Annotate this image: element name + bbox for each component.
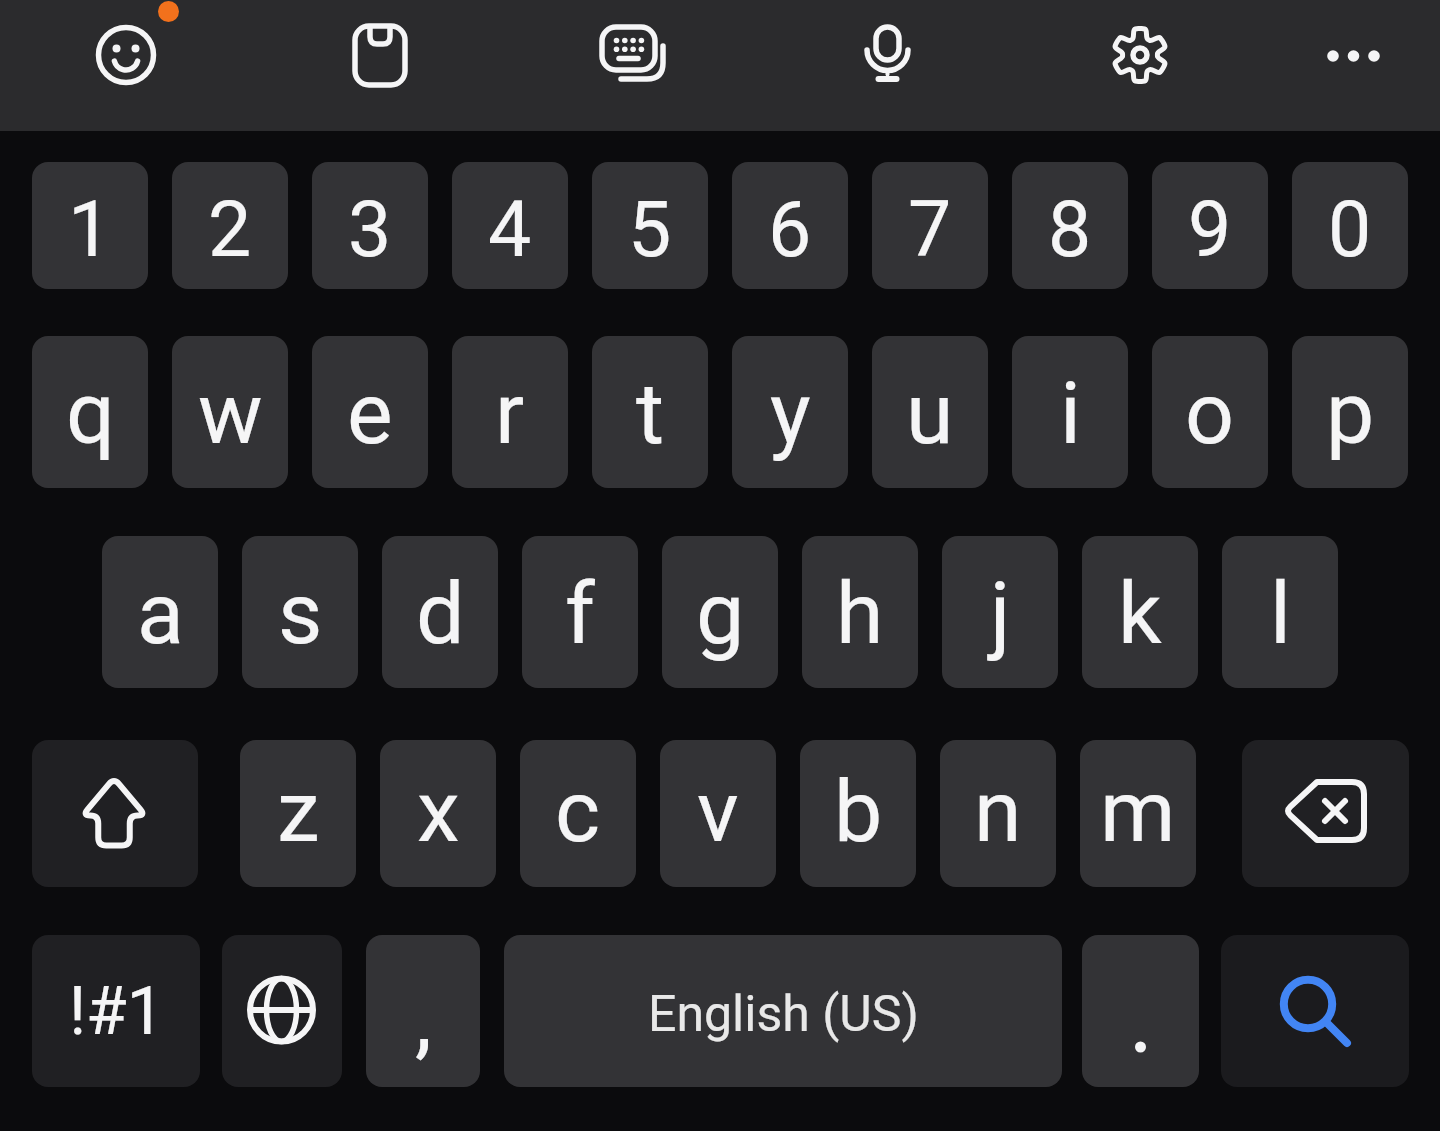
button[interactable]: y — [732, 336, 848, 488]
staticText: , — [415, 968, 432, 1069]
staticText: z — [277, 761, 320, 862]
staticText: 9 — [1188, 185, 1232, 275]
button[interactable]: g — [662, 536, 778, 688]
button[interactable]: p — [1292, 336, 1408, 488]
staticText: n — [974, 761, 1022, 862]
button[interactable]: English (US) — [504, 935, 1062, 1087]
button[interactable]: 1 — [32, 162, 148, 289]
button[interactable]: i — [1012, 336, 1128, 488]
staticText: h — [836, 563, 884, 664]
button[interactable] — [1242, 740, 1409, 887]
button[interactable] — [832, 0, 942, 131]
staticText: 4 — [488, 185, 532, 275]
staticText: w — [198, 363, 263, 464]
button[interactable]: u — [872, 336, 988, 488]
button[interactable]: w — [172, 336, 288, 488]
staticText: m — [1100, 761, 1176, 862]
staticText: 0 — [1328, 185, 1372, 275]
button[interactable]: a — [102, 536, 218, 688]
button[interactable]: , — [366, 935, 480, 1087]
button[interactable]: !#1 — [32, 935, 200, 1087]
button[interactable] — [222, 935, 342, 1087]
button[interactable]: x — [380, 740, 496, 887]
staticText: a — [137, 563, 184, 664]
button[interactable]: n — [940, 740, 1056, 887]
staticText: 7 — [908, 185, 952, 275]
staticText: q — [66, 363, 115, 464]
button[interactable]: l — [1222, 536, 1338, 688]
staticText: 5 — [628, 185, 672, 275]
button[interactable]: 5 — [592, 162, 708, 289]
staticText: u — [906, 363, 954, 464]
button[interactable]: t — [592, 336, 708, 488]
button[interactable]: q — [32, 336, 148, 488]
staticText: i — [1060, 363, 1081, 464]
button[interactable]: v — [660, 740, 776, 887]
staticText: c — [555, 761, 601, 862]
staticText: 3 — [348, 185, 392, 275]
staticText: 2 — [208, 185, 252, 275]
button[interactable]: j — [942, 536, 1058, 688]
staticText: 1 — [68, 185, 112, 275]
button[interactable]: k — [1082, 536, 1198, 688]
staticText: 6 — [768, 185, 812, 275]
staticText: v — [697, 761, 739, 862]
button[interactable] — [32, 740, 198, 887]
staticText: o — [1185, 363, 1235, 464]
button[interactable] — [1298, 0, 1408, 131]
button[interactable]: m — [1080, 740, 1196, 887]
staticText: r — [495, 363, 525, 464]
button[interactable]: r — [452, 336, 568, 488]
button[interactable]: b — [800, 740, 916, 887]
staticText: p — [1326, 363, 1375, 464]
button[interactable]: 3 — [312, 162, 428, 289]
button[interactable] — [1221, 935, 1409, 1087]
button[interactable]: 2 — [172, 162, 288, 289]
staticText: t — [636, 363, 665, 464]
button[interactable]: 0 — [1292, 162, 1408, 289]
staticText: s — [278, 563, 323, 664]
button[interactable]: e — [312, 336, 428, 488]
button[interactable]: 7 — [872, 162, 988, 289]
button[interactable] — [1082, 935, 1199, 1087]
staticText: k — [1118, 563, 1162, 664]
staticText: j — [990, 563, 1011, 664]
staticText: e — [347, 363, 393, 464]
button[interactable]: c — [520, 740, 636, 887]
button[interactable]: 8 — [1012, 162, 1128, 289]
button[interactable] — [71, 0, 181, 131]
button[interactable]: f — [522, 536, 638, 688]
button[interactable] — [1085, 0, 1195, 131]
button[interactable] — [325, 0, 435, 131]
button[interactable] — [574, 0, 684, 131]
staticText: f — [565, 563, 595, 664]
button[interactable]: 6 — [732, 162, 848, 289]
staticText: g — [696, 563, 745, 664]
button[interactable]: d — [382, 536, 498, 688]
staticText: 8 — [1048, 185, 1092, 275]
button[interactable]: z — [240, 740, 356, 887]
staticText: English (US) — [648, 985, 919, 1044]
button[interactable]: o — [1152, 336, 1268, 488]
staticText: b — [834, 761, 883, 862]
staticText: y — [770, 363, 811, 464]
staticText: x — [417, 761, 460, 862]
button[interactable]: s — [242, 536, 358, 688]
button[interactable]: 4 — [452, 162, 568, 289]
staticText: d — [416, 563, 465, 664]
staticText: l — [1270, 563, 1291, 664]
button[interactable]: h — [802, 536, 918, 688]
staticText: !#1 — [69, 973, 164, 1050]
button[interactable]: 9 — [1152, 162, 1268, 289]
